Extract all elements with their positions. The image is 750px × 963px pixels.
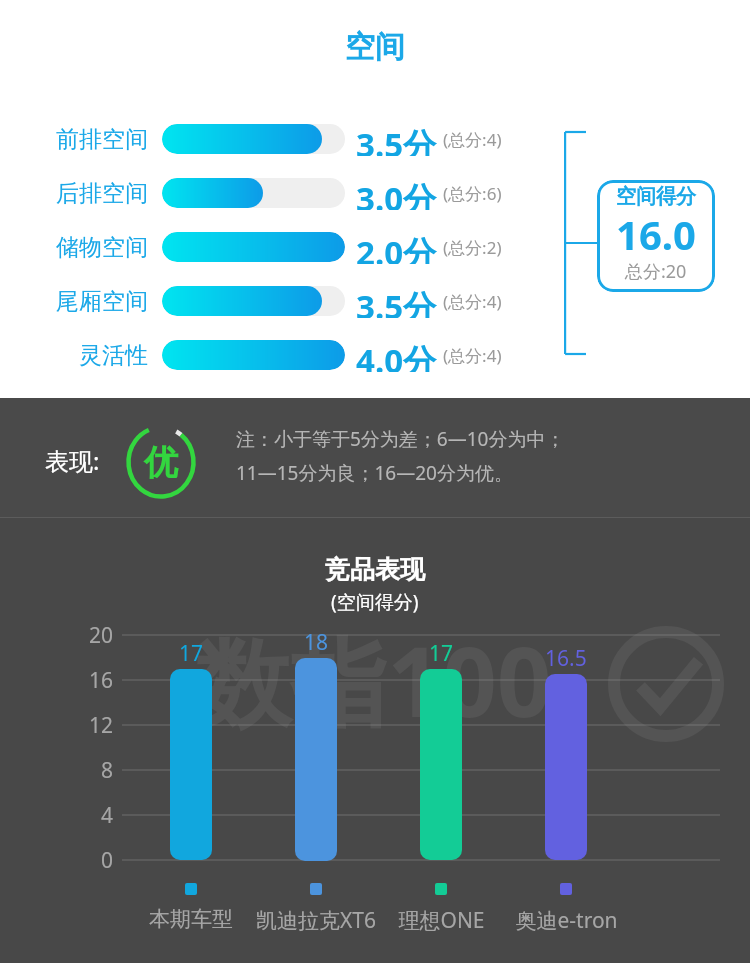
staticText: 空间: [345, 28, 405, 66]
staticText: 尾厢空间: [56, 287, 148, 316]
button[interactable]: 灵活性: [0, 338, 750, 372]
staticText: 8: [101, 756, 114, 785]
staticText: (总分:4): [443, 128, 502, 151]
staticText: 奥迪e-tron: [515, 906, 618, 935]
staticText: (总分:4): [443, 290, 502, 313]
staticText: 本期车型: [149, 906, 233, 932]
staticText: 16: [89, 666, 114, 695]
staticText: 0: [101, 846, 114, 875]
staticText: 总分:20: [625, 259, 687, 284]
staticText: (空间得分): [331, 589, 419, 615]
button[interactable]: 前排空间: [0, 122, 750, 156]
staticText: 理想ONE: [398, 906, 485, 935]
staticText: 11—15分为良；16—20分为优。: [236, 460, 513, 486]
button[interactable]: [170, 669, 212, 860]
staticText: 4.0分: [356, 338, 437, 372]
button[interactable]: 储物空间: [0, 230, 750, 264]
staticText: 后排空间: [56, 179, 148, 208]
button[interactable]: [545, 674, 587, 860]
staticText: 前排空间: [56, 125, 148, 154]
staticText: 空间得分: [616, 184, 696, 209]
staticText: (总分:2): [443, 236, 502, 259]
button[interactable]: 尾厢空间: [0, 284, 750, 318]
staticText: 4: [101, 801, 114, 830]
staticText: 2.0分: [356, 230, 437, 264]
staticText: 表现:: [45, 444, 100, 477]
staticText: 优: [144, 441, 178, 484]
button[interactable]: 后排空间: [0, 176, 750, 210]
staticText: 灵活性: [79, 341, 148, 370]
staticText: 注：小于等于5分为差；6—10分为中；: [236, 426, 565, 452]
button[interactable]: 优 rating: [124, 423, 198, 501]
button[interactable]: 空间得分: [597, 180, 715, 292]
staticText: 竞品表现: [325, 554, 425, 585]
staticText: (总分:6): [443, 182, 502, 205]
staticText: 17: [429, 639, 454, 668]
staticText: 17: [179, 639, 204, 668]
staticText: 12: [89, 711, 114, 740]
staticText: (总分:4): [443, 344, 502, 367]
staticText: 凯迪拉克XT6: [256, 906, 376, 935]
staticText: 数指100: [195, 614, 552, 745]
staticText: 储物空间: [56, 233, 148, 262]
staticText: 3.5分: [356, 122, 437, 156]
button[interactable]: [295, 658, 337, 861]
staticText: 18: [304, 628, 329, 657]
staticText: 3.0分: [356, 176, 437, 210]
button[interactable]: [420, 669, 462, 860]
staticText: 16.0: [616, 207, 696, 261]
staticText: 20: [89, 621, 114, 650]
staticText: 3.5分: [356, 284, 437, 318]
staticText: 16.5: [545, 644, 587, 673]
